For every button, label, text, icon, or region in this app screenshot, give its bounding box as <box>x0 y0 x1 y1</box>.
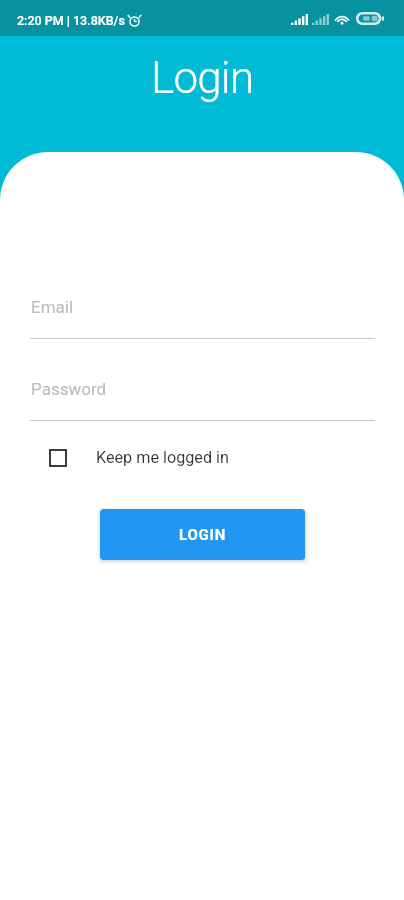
staticText: Login <box>151 52 254 104</box>
staticText: 2:20 PM | 13.8KB/s <box>17 13 125 28</box>
staticText: Email <box>31 297 74 317</box>
button[interactable]: LOGIN <box>100 509 305 560</box>
staticText: Keep me logged in <box>96 448 229 467</box>
other: Battery <box>356 12 384 25</box>
button[interactable]: Keep me logged in <box>49 448 229 467</box>
other: Alarm <box>128 14 141 27</box>
button[interactable]: Password <box>30 372 375 421</box>
staticText: Password <box>31 379 107 399</box>
button[interactable]: Email <box>30 290 375 339</box>
staticText: LOGIN <box>179 526 227 544</box>
